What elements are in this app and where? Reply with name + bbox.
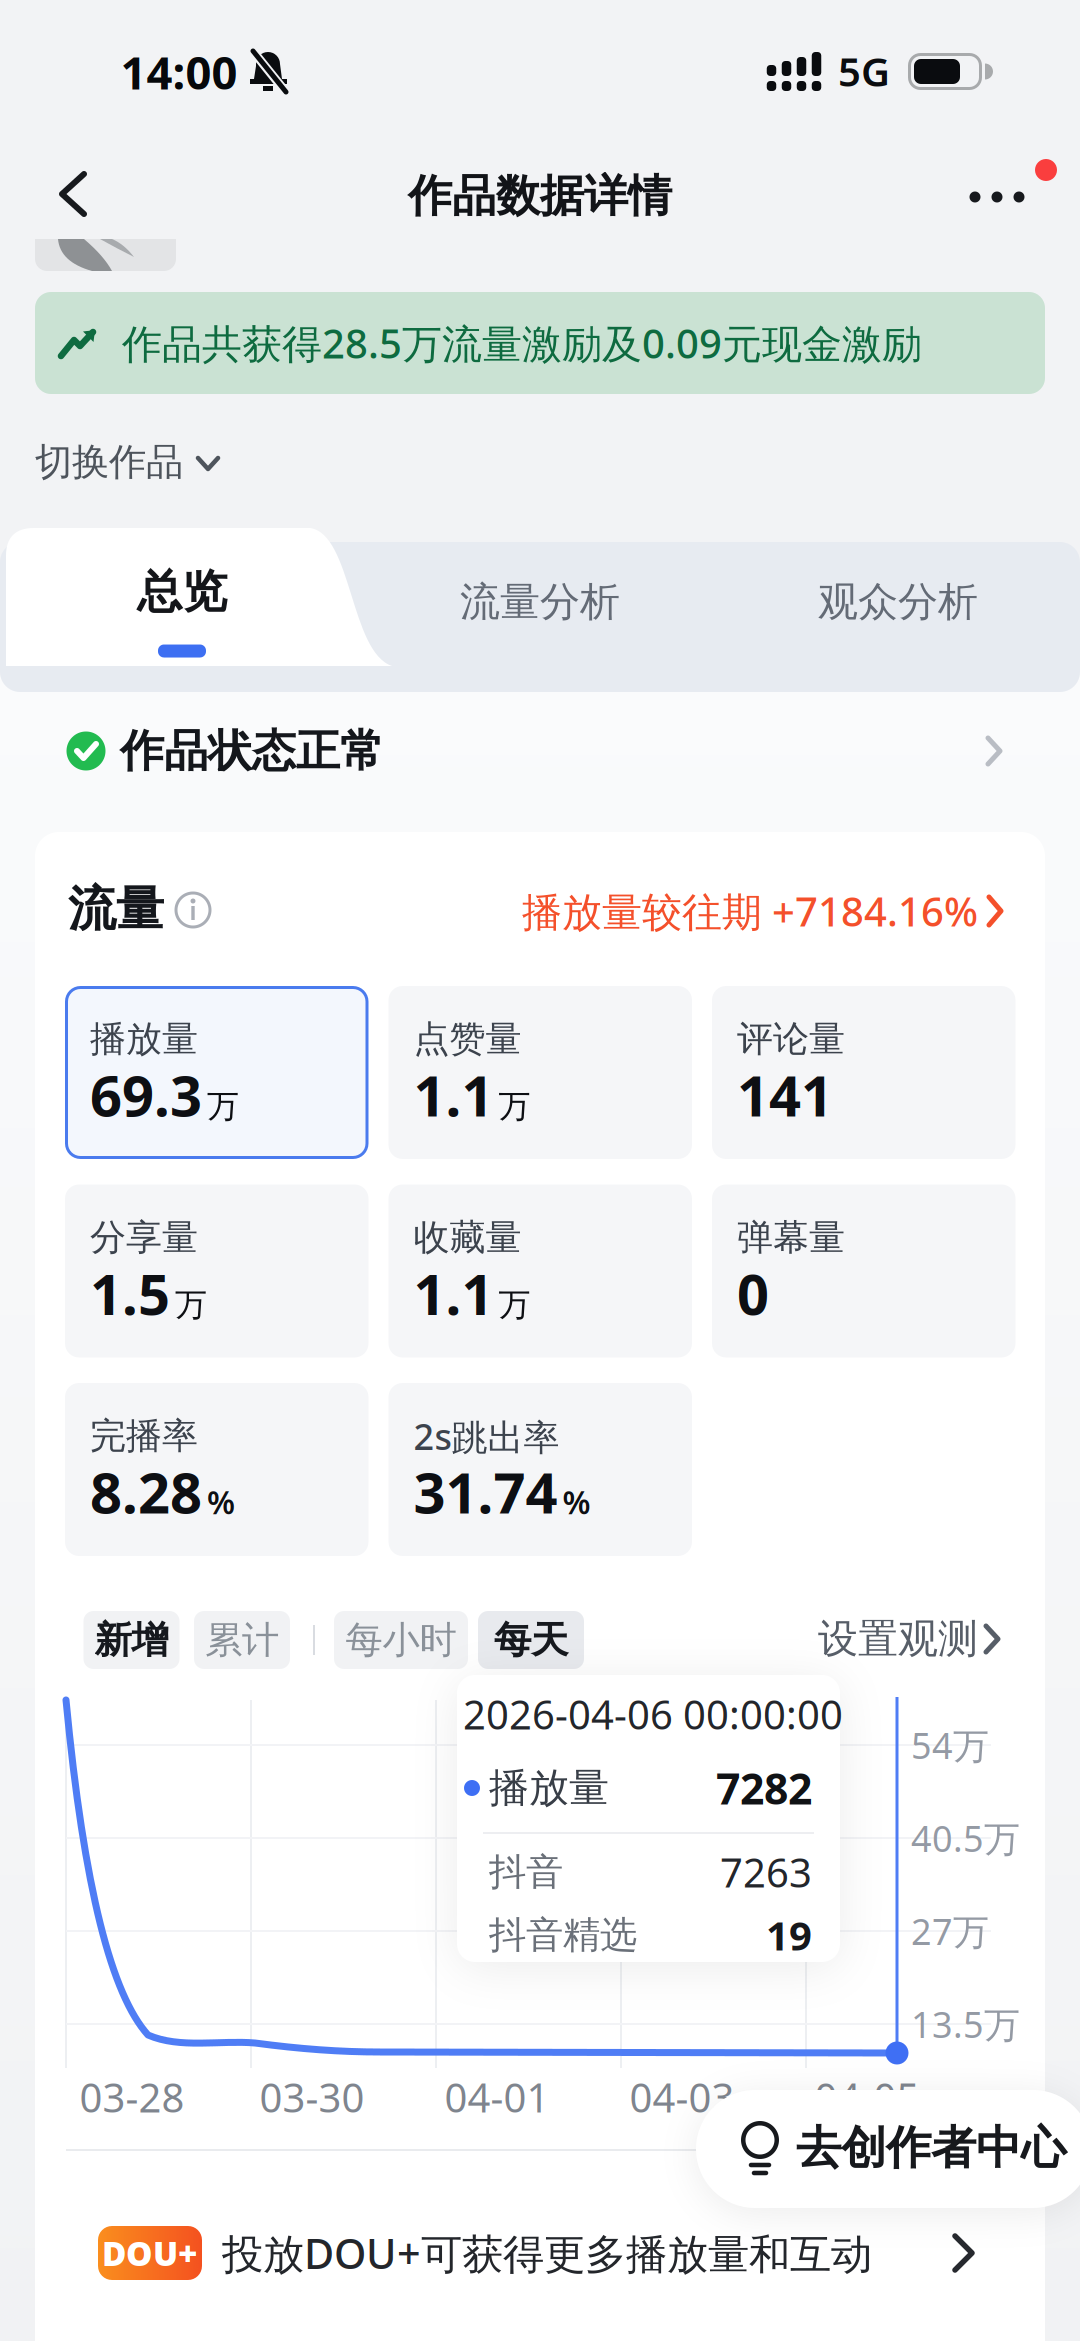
button[interactable]: 去创作者中心 <box>696 2090 1080 2208</box>
staticText: 2026-04-06 00:00:00 <box>463 1687 843 1740</box>
staticText: 1.1 <box>413 1256 493 1330</box>
staticText: 播放量 <box>90 1017 198 1061</box>
staticText: 点赞量 <box>413 1017 521 1061</box>
staticText: 54万 <box>911 1721 989 1769</box>
staticText: 抖音精选 <box>489 1912 637 1958</box>
staticText: DOU+ <box>102 2231 198 2275</box>
staticText: 流量分析 <box>460 577 620 626</box>
staticText: 0 <box>737 1256 769 1330</box>
staticText: 评论量 <box>737 1017 845 1061</box>
staticText: 投放DOU+可获得更多播放量和互动 <box>222 2226 872 2280</box>
staticText: 播放量较往期 +7184.16% <box>522 884 978 937</box>
staticText: 每小时 <box>345 1617 456 1663</box>
button[interactable]: 收藏量 <box>388 1184 692 1357</box>
staticText: 作品状态正常 <box>120 724 384 778</box>
staticText: 抖音 <box>489 1849 563 1895</box>
staticText: 累计 <box>205 1617 279 1663</box>
staticText: 1.5 <box>90 1256 170 1330</box>
button[interactable]: 总览 <box>97 532 267 664</box>
staticText: 8.28 <box>90 1455 202 1529</box>
button[interactable]: DOU+ <box>35 2198 1045 2308</box>
staticText: 播放量 <box>489 1763 609 1812</box>
button[interactable]: 累计 <box>194 1611 290 1669</box>
staticText: 万 <box>498 1285 530 1324</box>
staticText: 04-05 <box>814 2070 919 2123</box>
button[interactable]: 分享量 <box>65 1184 368 1357</box>
button[interactable]: 完播率 <box>65 1383 368 1556</box>
staticText: 新增 <box>94 1617 168 1663</box>
staticText: 作品数据详情 <box>408 169 672 223</box>
button[interactable]: 观众分析 <box>768 544 1028 660</box>
button[interactable]: 流量分析 <box>410 544 670 660</box>
staticText: 万 <box>498 1087 530 1126</box>
staticText: 分享量 <box>90 1215 198 1260</box>
staticText: 40.5万 <box>911 1814 1020 1862</box>
staticText: 5G <box>838 44 890 97</box>
staticText: 19 <box>766 1908 812 1961</box>
button[interactable]: 新增 <box>83 1611 179 1669</box>
staticText: 27万 <box>911 1907 989 1955</box>
button[interactable]: 作品状态正常 <box>36 711 1044 791</box>
button[interactable]: Back <box>50 166 96 222</box>
button[interactable]: 点赞量 <box>388 986 692 1159</box>
button[interactable]: 设置观测 <box>818 1611 1008 1667</box>
staticText: 流量 <box>68 879 164 938</box>
button[interactable]: 评论量 <box>712 986 1015 1159</box>
staticText: 作品共获得28.5万流量激励及0.09元现金激励 <box>122 316 922 369</box>
staticText: % <box>562 1480 590 1523</box>
staticText: 141 <box>737 1058 833 1132</box>
staticText: 04-03 <box>629 2070 734 2123</box>
button[interactable]: 切换作品 <box>35 431 235 493</box>
staticText: 万 <box>175 1285 207 1324</box>
staticText: 04-01 <box>444 2070 549 2123</box>
button[interactable]: 每小时 <box>334 1611 468 1669</box>
staticText: 每天 <box>494 1617 568 1663</box>
staticText: 7282 <box>716 1760 812 1816</box>
staticText: 7263 <box>720 1845 812 1898</box>
staticText: 切换作品 <box>35 439 183 485</box>
staticText: 31.74 <box>413 1455 557 1529</box>
staticText: 弹幕量 <box>737 1215 845 1260</box>
staticText: 14:00 <box>120 42 237 102</box>
staticText: 69.3 <box>90 1058 202 1132</box>
button[interactable]: 弹幕量 <box>712 1184 1015 1357</box>
button[interactable]: 作品共获得28.5万流量激励及0.09元现金激励 <box>35 292 1045 394</box>
staticText: 设置观测 <box>818 1614 978 1663</box>
staticText: 13.5万 <box>911 2000 1020 2048</box>
staticText: 观众分析 <box>818 577 978 626</box>
staticText: 1.1 <box>413 1058 493 1132</box>
button[interactable]: 播放量较往期 +7184.16% <box>448 881 1010 941</box>
staticText: 万 <box>207 1087 239 1126</box>
button[interactable]: 播放量 <box>65 986 368 1159</box>
staticText: 03-28 <box>79 2070 184 2123</box>
staticText: 2s跳出率 <box>413 1412 559 1460</box>
staticText: 03-30 <box>259 2070 364 2123</box>
staticText: 完播率 <box>90 1414 198 1458</box>
staticText: 去创作者中心 <box>796 2120 1066 2176</box>
button[interactable]: 2s跳出率 <box>388 1383 692 1556</box>
staticText: % <box>207 1480 235 1523</box>
button[interactable]: 每天 <box>478 1611 584 1669</box>
staticText: 总览 <box>137 564 227 620</box>
button[interactable]: More <box>956 172 1038 222</box>
staticText: 收藏量 <box>413 1215 521 1260</box>
